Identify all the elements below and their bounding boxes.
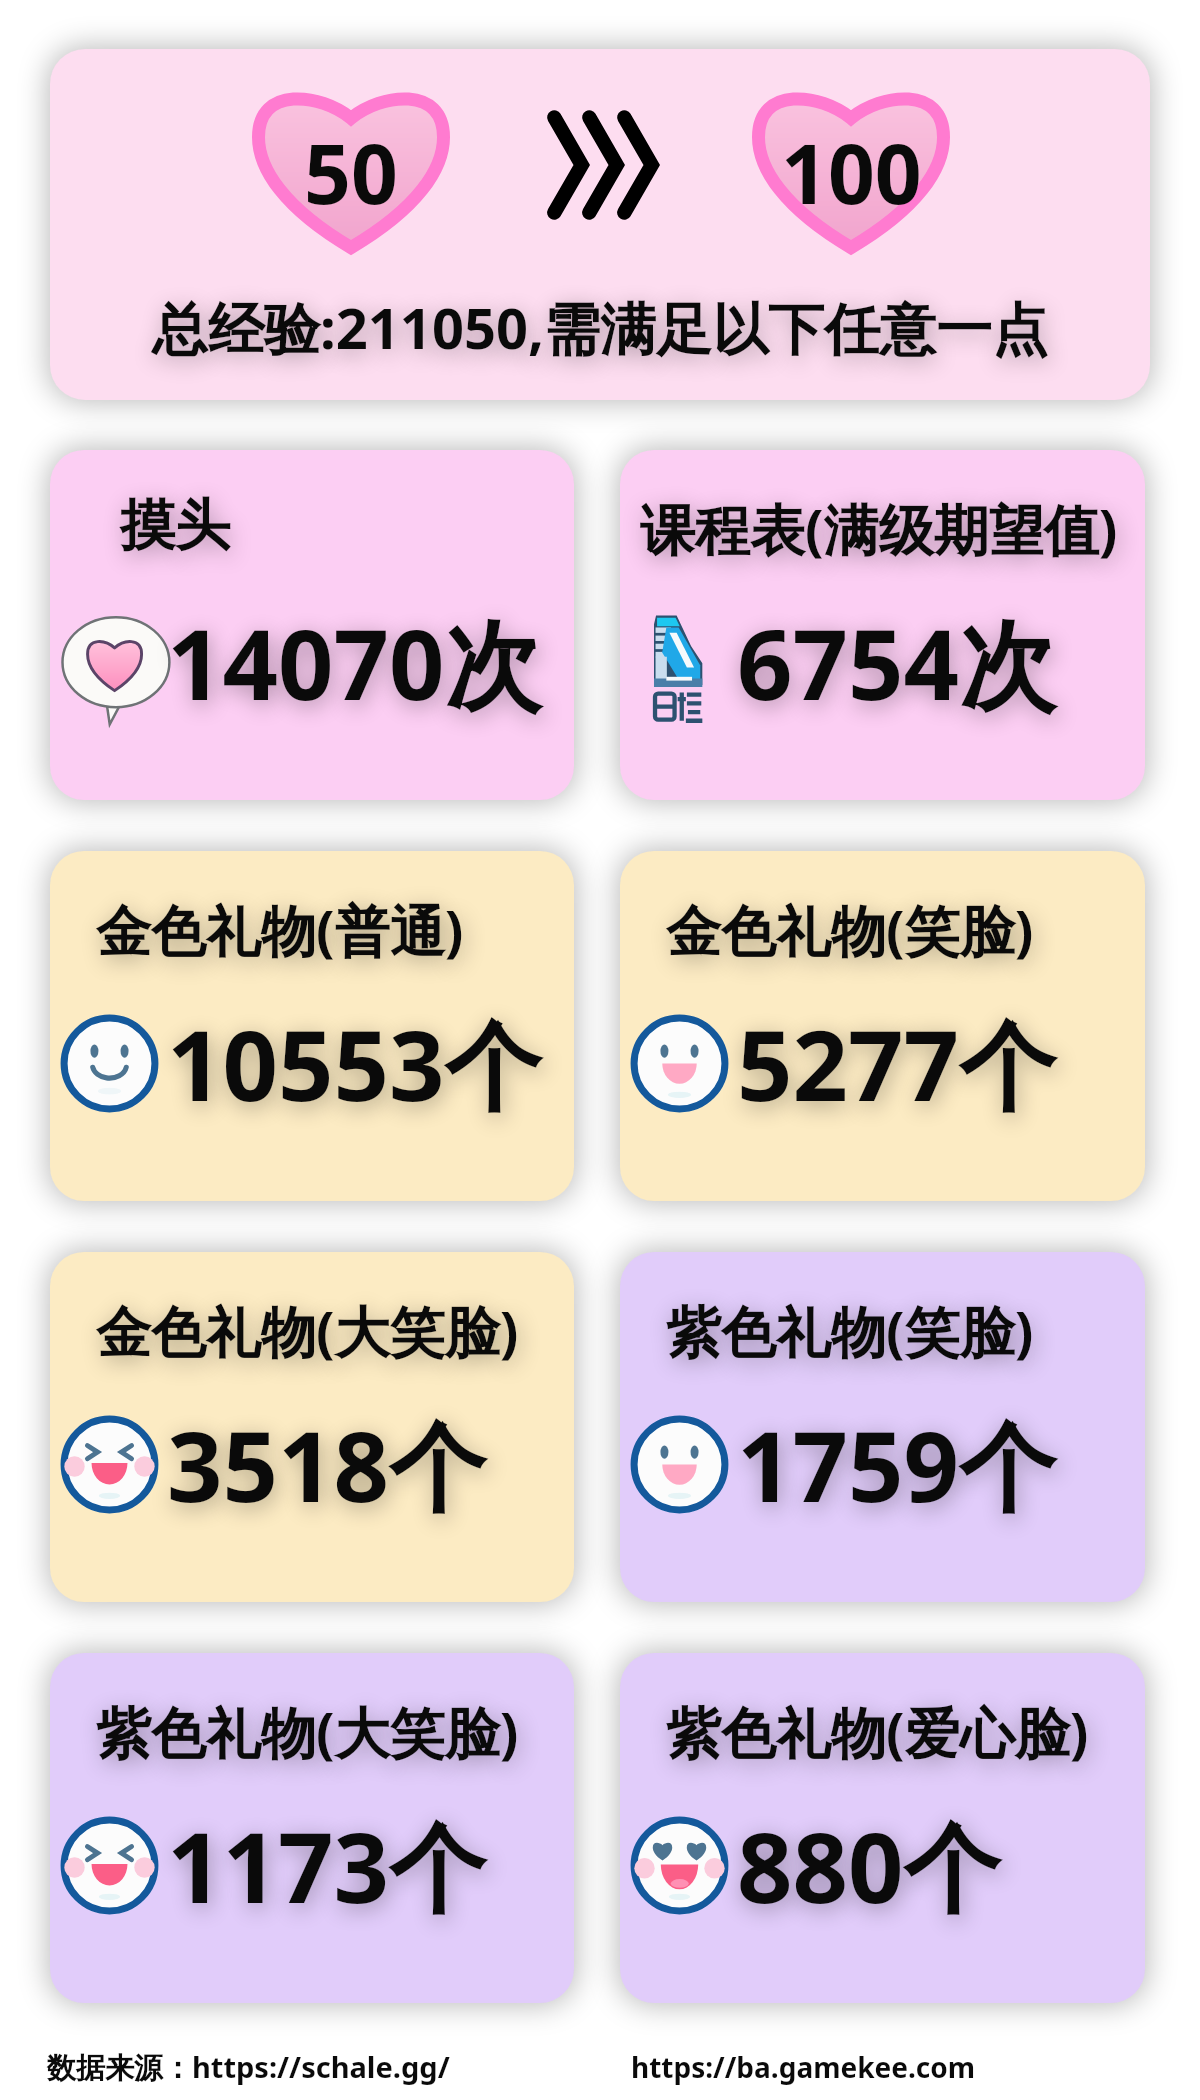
button[interactable]: 紫色礼物(笑脸)	[620, 1252, 1145, 1602]
other: Laughing face	[53, 1809, 166, 1922]
other: Schedule	[623, 606, 736, 719]
staticText: 50	[304, 116, 398, 228]
staticText: 金色礼物(大笑脸)	[96, 1293, 519, 1368]
other: Grinning face	[623, 1408, 736, 1521]
button[interactable]: 紫色礼物(大笑脸)	[50, 1653, 574, 2003]
button[interactable]: 课程表(满级期望值)	[620, 450, 1145, 800]
staticText: 金色礼物(笑脸)	[666, 892, 1034, 967]
other: Laughing face	[53, 1408, 166, 1521]
staticText: 数据来源：https://schale.gg/	[47, 2047, 450, 2087]
button[interactable]: 金色礼物(大笑脸)	[50, 1252, 574, 1602]
staticText: 1759个	[737, 1398, 1056, 1530]
staticText: 100	[781, 116, 922, 228]
staticText: 课程表(满级期望值)	[640, 491, 1118, 566]
other: Head pat	[53, 606, 166, 719]
other: Grinning face	[623, 1007, 736, 1120]
staticText: 1173个	[167, 1799, 486, 1931]
button[interactable]: 金色礼物(普通)	[50, 851, 574, 1201]
button[interactable]: 数据来源：https://schale.gg/	[47, 2047, 450, 2087]
staticText: 紫色礼物(笑脸)	[666, 1293, 1034, 1368]
staticText: 金色礼物(普通)	[96, 892, 464, 967]
staticText: 880个	[737, 1799, 1001, 1931]
staticText: 6754次	[737, 596, 1056, 728]
staticText: 5277个	[737, 997, 1056, 1129]
staticText: 3518个	[167, 1398, 486, 1530]
button[interactable]: 金色礼物(笑脸)	[620, 851, 1145, 1201]
staticText: https://ba.gamekee.com	[631, 2048, 976, 2086]
other: Progress arrows	[547, 109, 659, 221]
button[interactable]: https://ba.gamekee.com	[631, 2048, 976, 2086]
staticText: 14070次	[167, 596, 542, 728]
other: Smiling face	[53, 1007, 166, 1120]
staticText: 10553个	[167, 997, 542, 1129]
button[interactable]: 50	[50, 49, 1150, 400]
staticText: 紫色礼物(大笑脸)	[96, 1694, 519, 1769]
other: Heart eyes face	[623, 1809, 736, 1922]
staticText: 摸头	[120, 491, 230, 560]
staticText: 总经验:211050,需满足以下任意一点	[152, 289, 1048, 365]
button[interactable]: 摸头	[50, 450, 574, 800]
button[interactable]: 紫色礼物(爱心脸)	[620, 1653, 1145, 2003]
staticText: 紫色礼物(爱心脸)	[666, 1694, 1089, 1769]
